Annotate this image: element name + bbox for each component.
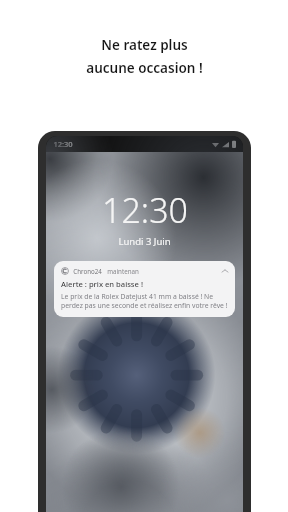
staticText: 12:30 [102, 187, 188, 233]
staticText: 12:30 [53, 139, 73, 149]
staticText: maintenan [107, 267, 139, 275]
staticText: Chrono24 [73, 267, 102, 275]
button[interactable]: Réduire la notification [220, 266, 229, 275]
button[interactable]: Chrono24 [54, 261, 235, 317]
staticText: aucune occasion ! [86, 59, 203, 77]
staticText: Ne ratez plus [101, 36, 188, 54]
staticText: Le prix de la Rolex Datejust 41 mm a bai… [61, 292, 229, 310]
staticText: Lundi 3 Juin [118, 235, 171, 248]
staticText: Alerte : prix en baisse ! [61, 279, 143, 289]
